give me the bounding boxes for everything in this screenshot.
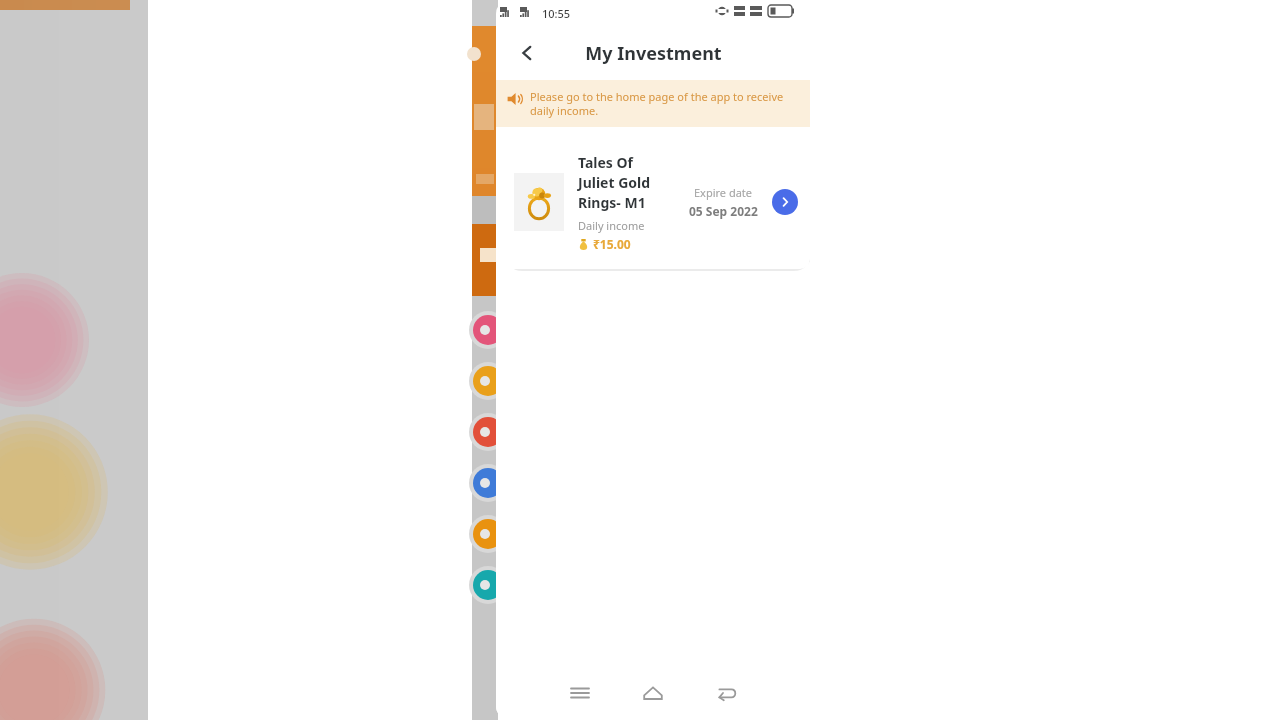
staticText: Daily income [578,218,645,233]
staticText: Please go to the home page of the app to… [530,89,802,118]
staticText: My Investment [585,41,722,66]
staticText: 05 Sep 2022 [689,203,758,219]
button[interactable]: View details [772,189,798,215]
button[interactable]: Tales Of Juliet Gold Rings- M1 [502,135,810,269]
staticText: ₹15.00 [593,236,631,252]
staticText: Tales Of Juliet Gold Rings- M1 [578,153,673,212]
staticText: 10:55 [542,6,571,21]
button[interactable]: Back [510,36,544,70]
button[interactable]: Home [633,673,673,713]
button[interactable]: Recents [560,673,600,713]
button[interactable]: Back [707,673,747,713]
staticText: Expire date [694,185,753,200]
